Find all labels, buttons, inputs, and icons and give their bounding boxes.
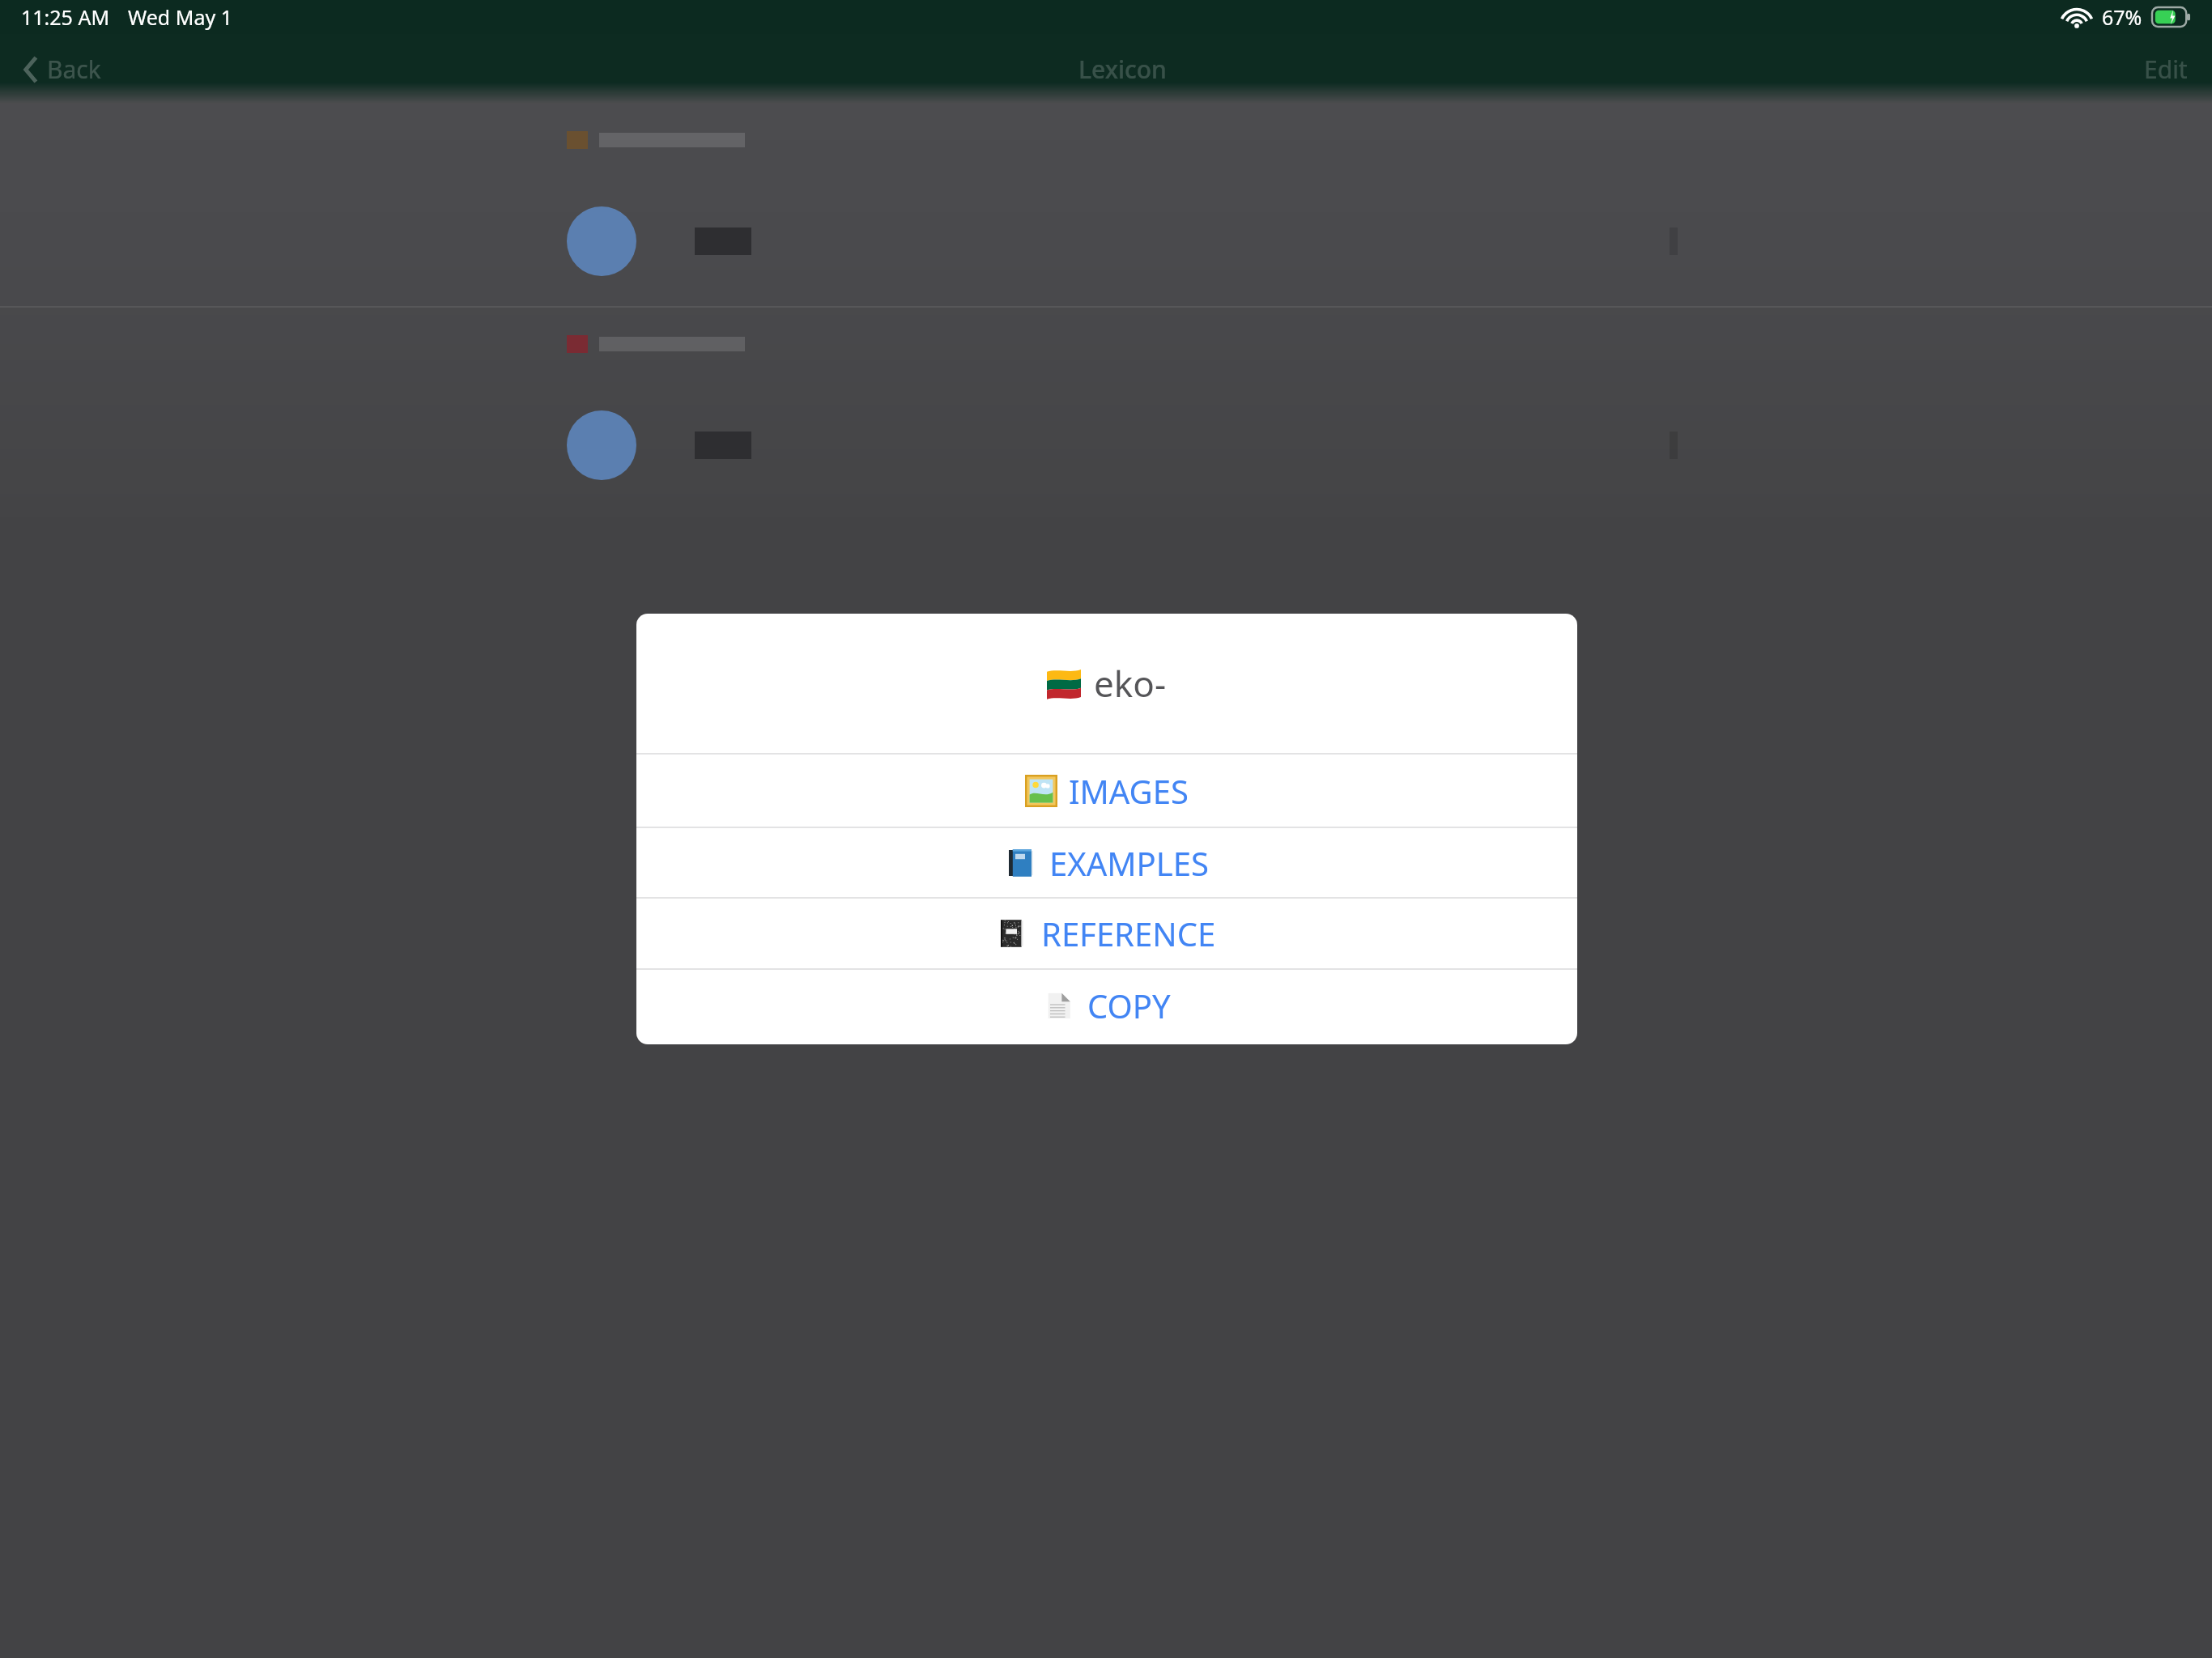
button[interactable]: REFERENCE [636,899,1577,968]
staticText: COPY [1087,984,1171,1027]
staticText: 67% [2102,3,2142,31]
button[interactable]: IMAGES [636,755,1577,827]
staticText: Back [47,53,101,86]
staticText: EXAMPLES [1049,841,1209,885]
button[interactable]: Edit [2138,46,2194,92]
staticText: Edit [2144,53,2188,86]
staticText: eko- [1094,659,1167,708]
button[interactable]: Back [18,46,108,92]
button[interactable] [0,380,2212,510]
button[interactable]: EXAMPLES [636,828,1577,897]
staticText: Wed May 1 [128,3,232,31]
staticText: 11:25 AM [21,3,110,31]
staticText: IMAGES [1069,769,1189,813]
staticText: Lexicon [1078,53,1167,86]
button[interactable] [0,176,2212,306]
staticText: REFERENCE [1041,912,1216,955]
button[interactable]: COPY [636,970,1577,1041]
